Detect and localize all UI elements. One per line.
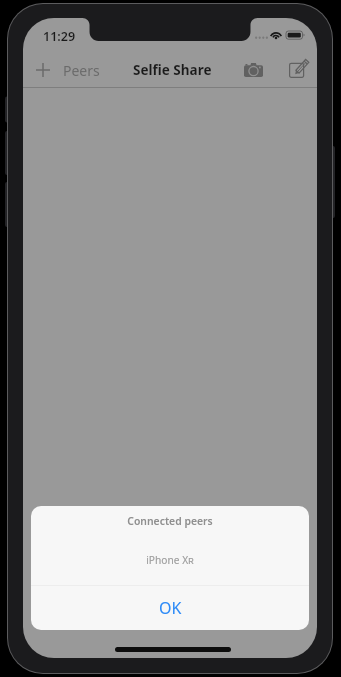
button[interactable]: OK (31, 586, 309, 630)
staticText: Connected peers (127, 514, 213, 528)
staticText: Peers (63, 61, 100, 80)
staticText: Selfie Share (133, 61, 212, 79)
button[interactable]: Peers (23, 50, 106, 88)
button[interactable]: Compose (281, 50, 317, 86)
staticText: OK (159, 597, 182, 619)
staticText: iPhone Xʀ (146, 553, 194, 567)
staticText: 11:29 (43, 28, 76, 45)
button[interactable]: Camera (238, 50, 281, 86)
